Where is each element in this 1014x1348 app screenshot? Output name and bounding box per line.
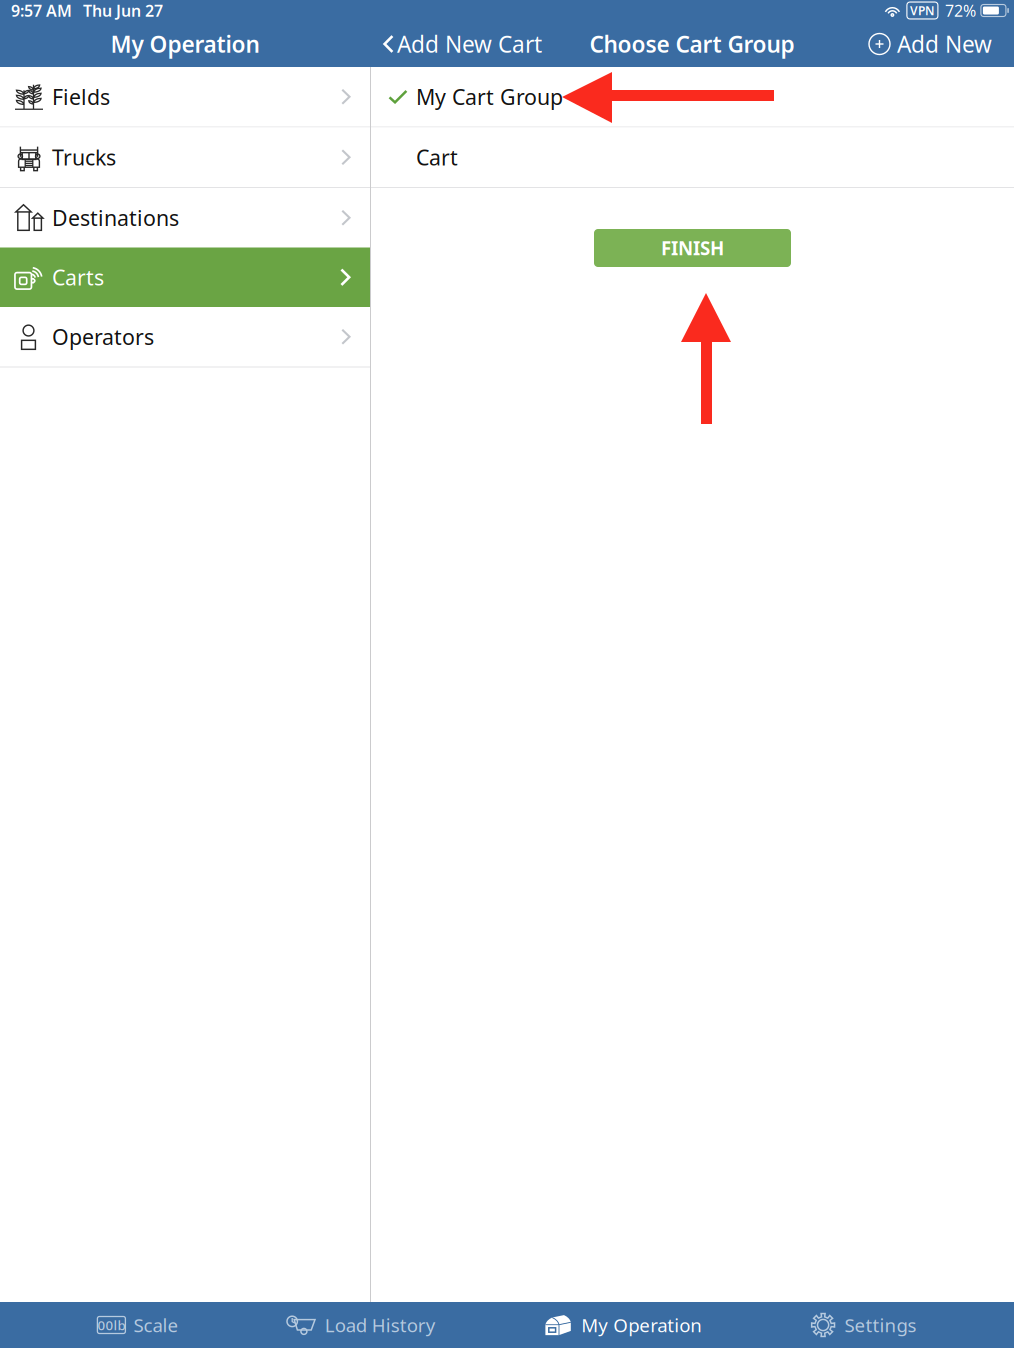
button[interactable]: My Operation xyxy=(533,1302,712,1348)
staticText: Fields xyxy=(52,83,110,111)
button[interactable]: Operators xyxy=(0,307,370,366)
staticText: Add New Cart xyxy=(397,29,542,59)
button[interactable]: Add New xyxy=(869,21,1014,67)
staticText: Choose Cart Group xyxy=(589,29,794,59)
staticText: FINISH xyxy=(661,236,724,260)
button[interactable]: Trucks xyxy=(0,127,370,187)
staticText: Trucks xyxy=(52,143,116,171)
staticText: Load History xyxy=(325,1313,436,1337)
button[interactable]: Carts xyxy=(0,247,370,307)
button[interactable]: Settings xyxy=(800,1302,927,1348)
staticText: VPN xyxy=(910,2,935,18)
staticText: My Operation xyxy=(110,29,259,59)
staticText: Scale xyxy=(133,1313,178,1337)
button[interactable]: 00lb xyxy=(87,1302,188,1348)
staticText: Carts xyxy=(52,263,104,291)
staticText: 00lb xyxy=(97,1316,125,1334)
staticText: 9:57 AM xyxy=(11,0,72,21)
button[interactable]: Load History xyxy=(276,1302,446,1348)
staticText: Destinations xyxy=(52,204,179,232)
button[interactable]: Add New Cart xyxy=(370,21,542,67)
staticText: Thu Jun 27 xyxy=(83,0,163,21)
staticText: My Cart Group xyxy=(416,83,563,111)
button[interactable]: Cart xyxy=(371,127,1014,187)
staticText: Operators xyxy=(52,323,154,351)
staticText: My Operation xyxy=(581,1313,702,1337)
button[interactable]: My Cart Group xyxy=(371,67,1014,126)
staticText: Cart xyxy=(416,143,458,171)
staticText: Add New xyxy=(897,29,992,59)
button[interactable]: Fields xyxy=(0,67,370,126)
button[interactable]: FINISH xyxy=(594,229,791,267)
staticText: Settings xyxy=(845,1313,917,1337)
staticText: 72% xyxy=(945,0,976,21)
button[interactable]: Destinations xyxy=(0,188,370,247)
